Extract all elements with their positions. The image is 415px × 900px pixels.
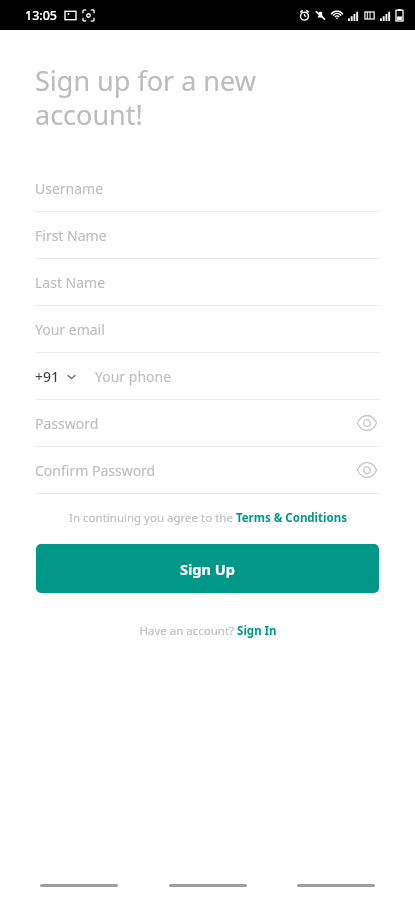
button[interactable]: Show password (354, 410, 380, 436)
staticText: Sign Up (180, 559, 235, 579)
staticText: Have an account? Sign In (139, 623, 277, 639)
button[interactable]: Home (158, 874, 258, 896)
staticText: +91 (35, 367, 60, 386)
staticText: Sign up for a new account! (35, 62, 256, 133)
button[interactable]: Recents (286, 874, 386, 896)
staticText: Last Name (35, 273, 380, 292)
button[interactable]: Confirm Password (0, 447, 415, 493)
button[interactable]: In continuing you agree to the Terms & C… (0, 506, 415, 530)
staticText: Your email (35, 320, 380, 339)
staticText: First Name (35, 226, 380, 245)
button[interactable]: Sign Up (36, 544, 379, 593)
button[interactable]: Have an account? Sign In (0, 619, 415, 643)
staticText: Your phone (95, 367, 172, 386)
staticText: Password (35, 414, 354, 433)
staticText: 13:05 (25, 7, 58, 24)
button[interactable]: Your email (0, 306, 415, 352)
staticText: In continuing you agree to the Terms & C… (69, 510, 347, 526)
staticText: Username (35, 179, 380, 198)
button[interactable]: Your phone (95, 367, 380, 386)
button[interactable]: First Name (0, 212, 415, 258)
button[interactable]: Back (29, 874, 129, 896)
staticText: Confirm Password (35, 461, 354, 480)
button[interactable]: Last Name (0, 259, 415, 305)
button[interactable]: Username (0, 165, 415, 211)
button[interactable]: Password (0, 400, 415, 446)
button[interactable]: +91 (35, 367, 83, 386)
button[interactable]: Show password (354, 457, 380, 483)
